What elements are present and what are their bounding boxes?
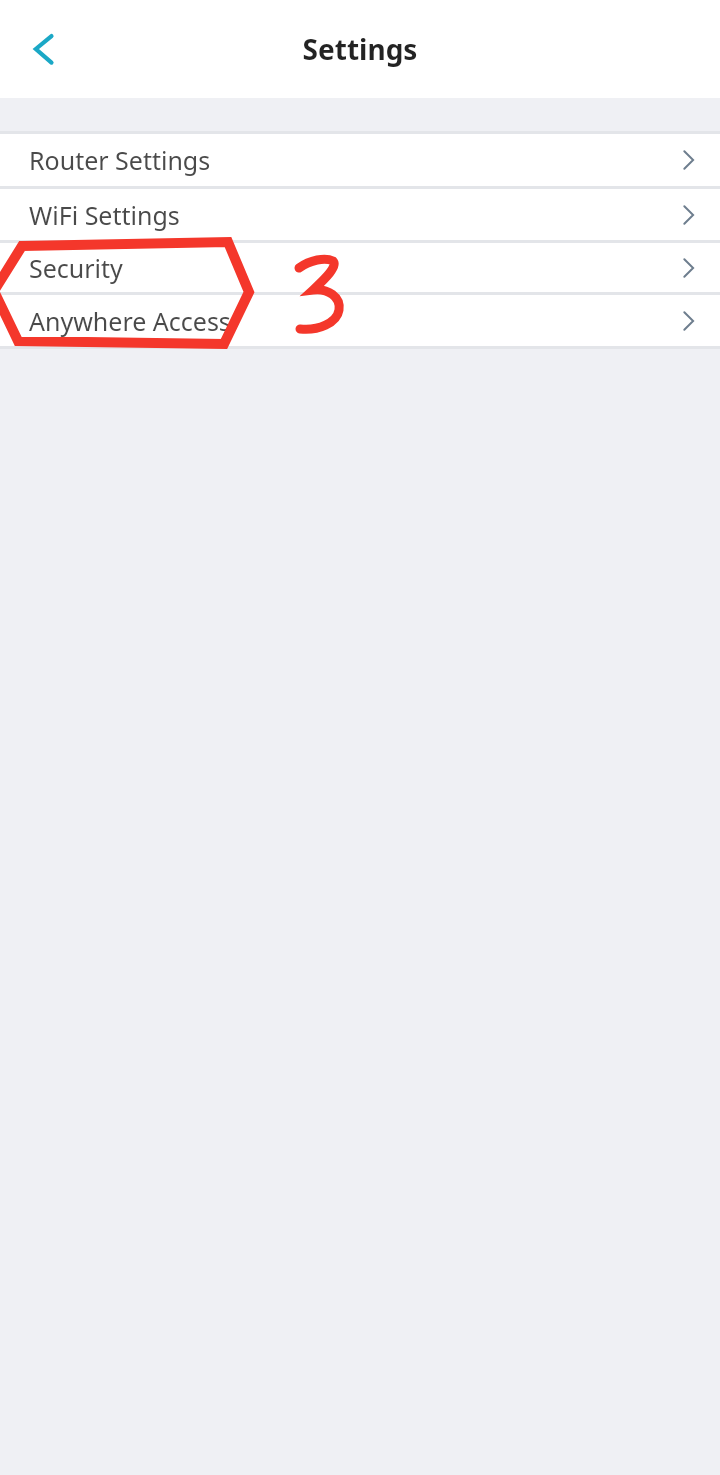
button[interactable]: Router Settings: [0, 134, 720, 186]
button[interactable]: WiFi Settings: [0, 189, 720, 240]
staticText: WiFi Settings: [29, 198, 180, 232]
staticText: Router Settings: [29, 143, 211, 177]
staticText: Anywhere Access: [29, 304, 231, 338]
staticText: Settings: [0, 30, 720, 68]
button[interactable]: Security: [0, 243, 720, 292]
button[interactable]: Back: [12, 17, 76, 81]
button[interactable]: Anywhere Access: [0, 295, 720, 346]
staticText: Security: [29, 251, 123, 285]
